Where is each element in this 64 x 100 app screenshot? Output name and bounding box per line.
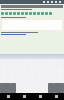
button[interactable] [5, 12, 8, 15]
button[interactable] [9, 12, 12, 15]
button[interactable] [45, 12, 48, 15]
button[interactable] [29, 12, 32, 15]
button[interactable] [21, 12, 24, 15]
button[interactable] [49, 12, 52, 15]
button[interactable] [37, 12, 40, 15]
button[interactable] [10, 83, 16, 93]
button[interactable] [25, 12, 28, 15]
button[interactable] [48, 83, 54, 93]
button[interactable] [41, 12, 44, 15]
button[interactable] [17, 12, 20, 15]
button[interactable] [1, 12, 4, 15]
button[interactable] [33, 12, 36, 15]
button[interactable] [0, 83, 10, 93]
button[interactable] [54, 83, 64, 93]
button[interactable] [13, 12, 16, 15]
